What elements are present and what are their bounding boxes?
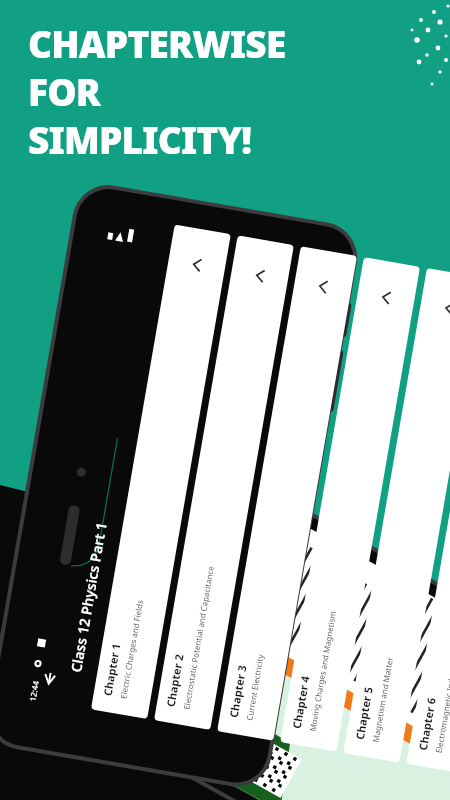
button[interactable]: Chapterwise for simplicity — app preview: [0, 0, 450, 800]
